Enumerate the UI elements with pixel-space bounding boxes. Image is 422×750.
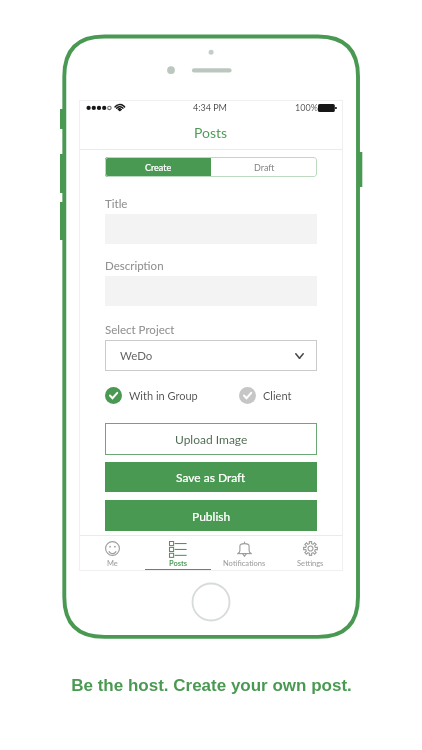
staticText: Draft <box>254 162 275 173</box>
staticText: Posts <box>169 559 188 568</box>
staticText: Publish <box>192 509 231 523</box>
staticText: Client <box>263 389 292 402</box>
button[interactable]: Client <box>239 387 292 404</box>
staticText: Create <box>145 162 172 173</box>
button[interactable]: With in Group <box>105 387 198 404</box>
staticText: Settings <box>297 559 324 568</box>
button[interactable]: WeDo <box>105 340 317 371</box>
staticText: Me <box>107 559 118 568</box>
staticText: WeDo <box>120 349 153 363</box>
staticText: Posts <box>194 124 228 141</box>
staticText: 100% <box>295 102 318 113</box>
button[interactable]: Upload Image <box>105 423 317 455</box>
staticText: Upload Image <box>175 432 248 446</box>
button[interactable]: Me <box>79 536 145 571</box>
button[interactable]: Posts <box>145 536 211 571</box>
button[interactable]: Publish <box>105 500 317 531</box>
button[interactable]: Create <box>105 157 211 177</box>
button[interactable]: Notifications <box>211 536 277 571</box>
button[interactable]: Save as Draft <box>105 462 317 492</box>
staticText: Title <box>105 197 128 211</box>
button[interactable]: Draft <box>211 157 317 177</box>
staticText: Be the host. Create your own post. <box>71 676 352 695</box>
staticText: Description <box>105 259 164 273</box>
staticText: With in Group <box>129 389 198 402</box>
staticText: Select Project <box>105 323 175 337</box>
staticText: Notifications <box>223 559 266 568</box>
button[interactable]: Settings <box>277 536 343 571</box>
staticText: 4:34 PM <box>193 102 227 113</box>
staticText: Save as Draft <box>176 470 246 484</box>
